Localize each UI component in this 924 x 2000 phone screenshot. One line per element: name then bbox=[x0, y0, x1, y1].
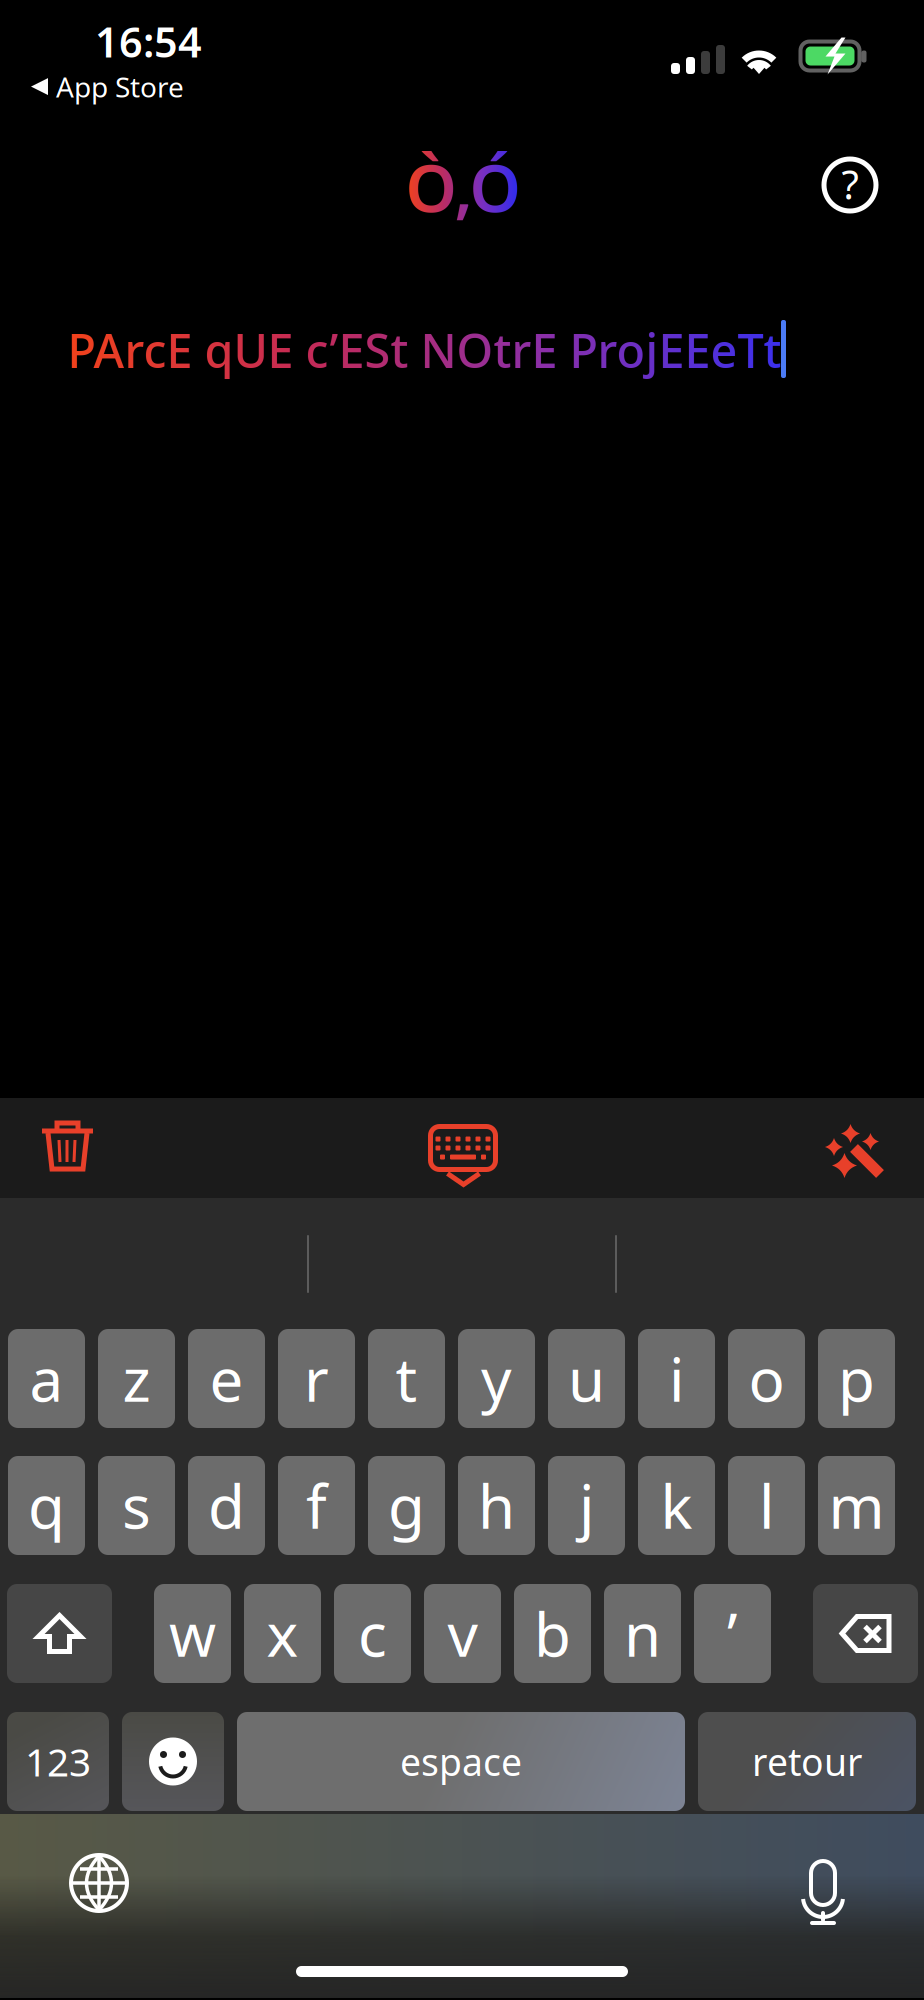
button[interactable]: espace bbox=[237, 1712, 685, 1811]
staticText: n bbox=[624, 1594, 661, 1673]
button[interactable]: 123 bbox=[7, 1712, 109, 1811]
staticText: 16:54 bbox=[95, 14, 202, 69]
button[interactable]: l bbox=[728, 1456, 805, 1555]
staticText: retour bbox=[752, 1737, 862, 1786]
staticText: u bbox=[568, 1339, 605, 1418]
button[interactable]: h bbox=[458, 1456, 535, 1555]
staticText: w bbox=[169, 1594, 216, 1673]
staticText: espace bbox=[400, 1737, 522, 1786]
button[interactable]: j bbox=[548, 1456, 625, 1555]
button[interactable]: Next keyboard bbox=[44, 1828, 154, 1938]
staticText: x bbox=[266, 1594, 298, 1673]
staticText: e bbox=[209, 1339, 243, 1418]
button[interactable]: y bbox=[458, 1329, 535, 1428]
staticText: c bbox=[358, 1594, 387, 1673]
button[interactable]: i bbox=[638, 1329, 715, 1428]
button[interactable]: g bbox=[368, 1456, 445, 1555]
button[interactable]: Hide keyboard bbox=[403, 1098, 523, 1198]
staticText: p bbox=[838, 1339, 875, 1418]
button[interactable]: Backspace bbox=[813, 1584, 918, 1683]
button[interactable]: k bbox=[638, 1456, 715, 1555]
staticText: ’ bbox=[727, 1594, 738, 1673]
button[interactable]: m bbox=[818, 1456, 895, 1555]
button[interactable]: e bbox=[188, 1329, 265, 1428]
button[interactable]: q bbox=[8, 1456, 85, 1555]
staticText: v bbox=[447, 1594, 477, 1673]
staticText: r bbox=[304, 1339, 329, 1418]
button[interactable]: b bbox=[514, 1584, 591, 1683]
staticText: f bbox=[306, 1466, 327, 1545]
staticText: b bbox=[534, 1594, 571, 1673]
button[interactable]: x bbox=[244, 1584, 321, 1683]
button[interactable]: u bbox=[548, 1329, 625, 1428]
button[interactable]: r bbox=[278, 1329, 355, 1428]
staticText: ? bbox=[841, 157, 858, 210]
button[interactable]: t bbox=[368, 1329, 445, 1428]
staticText: y bbox=[481, 1339, 512, 1418]
button[interactable]: f bbox=[278, 1456, 355, 1555]
staticText: 123 bbox=[25, 1736, 91, 1787]
staticText: q bbox=[28, 1466, 65, 1545]
button[interactable]: Emoji bbox=[122, 1712, 224, 1811]
button[interactable]: ’ bbox=[694, 1584, 771, 1683]
staticText: a bbox=[29, 1339, 63, 1418]
staticText: g bbox=[388, 1466, 425, 1545]
staticText: i bbox=[669, 1339, 684, 1418]
staticText: d bbox=[208, 1466, 245, 1545]
button[interactable]: a bbox=[8, 1329, 85, 1428]
staticText: App Store bbox=[56, 68, 184, 105]
staticText: l bbox=[759, 1466, 774, 1545]
button[interactable]: retour bbox=[698, 1712, 916, 1811]
staticText: h bbox=[478, 1466, 515, 1545]
button[interactable]: Dictation bbox=[768, 1828, 878, 1938]
button[interactable]: s bbox=[98, 1456, 175, 1555]
button[interactable]: w bbox=[154, 1584, 231, 1683]
staticText: z bbox=[122, 1339, 150, 1418]
button[interactable]: n bbox=[604, 1584, 681, 1683]
button[interactable]: z bbox=[98, 1329, 175, 1428]
staticText: t bbox=[395, 1339, 417, 1418]
staticText: k bbox=[660, 1466, 692, 1545]
staticText: o bbox=[748, 1339, 784, 1418]
button[interactable]: Delete text bbox=[8, 1094, 128, 1194]
button[interactable]: d bbox=[188, 1456, 265, 1555]
staticText: j bbox=[579, 1466, 594, 1545]
button[interactable]: o bbox=[728, 1329, 805, 1428]
button[interactable]: Shift bbox=[7, 1584, 112, 1683]
staticText: m bbox=[828, 1466, 884, 1545]
button[interactable]: v bbox=[424, 1584, 501, 1683]
staticText: s bbox=[122, 1466, 151, 1545]
button[interactable]: c bbox=[334, 1584, 411, 1683]
button[interactable]: p bbox=[818, 1329, 895, 1428]
button[interactable]: Help bbox=[804, 139, 896, 231]
button[interactable]: Magic effects bbox=[796, 1103, 916, 1203]
